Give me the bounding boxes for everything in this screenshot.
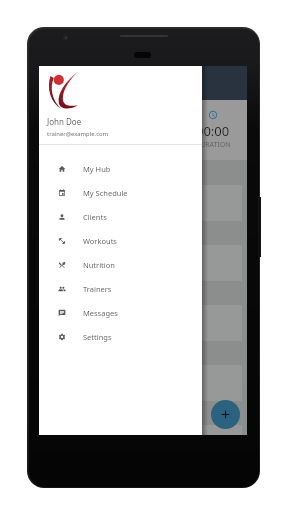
staticText: trainer@example.com [47, 130, 109, 138]
staticText: Workouts [83, 236, 117, 246]
button[interactable]: Messages [39, 301, 202, 325]
button[interactable]: Add workout [211, 400, 240, 429]
button[interactable]: Nutrition [39, 253, 202, 277]
staticText: Clients [83, 212, 107, 222]
button[interactable] [45, 185, 242, 221]
button[interactable]: Settings [39, 325, 202, 349]
staticText: WORKOUTS [55, 140, 94, 150]
staticText: 0 [70, 122, 78, 140]
button[interactable] [45, 245, 242, 281]
button[interactable]: My Hub [39, 157, 202, 181]
button[interactable]: Clients [39, 205, 202, 229]
staticText: Settings [83, 332, 112, 342]
staticText: Trainers [83, 284, 112, 294]
staticText: 00:00 [196, 122, 230, 140]
staticText: My Schedule [83, 188, 128, 198]
button[interactable] [45, 305, 242, 341]
staticText: DURATION [195, 140, 231, 150]
button[interactable]: Trainers [39, 277, 202, 301]
staticText: My Hub [83, 164, 111, 174]
staticText: Messages [83, 308, 118, 318]
button[interactable]: Workouts [39, 229, 202, 253]
staticText: CLIENTS [130, 140, 158, 150]
button[interactable]: My Schedule [39, 181, 202, 205]
button[interactable] [45, 365, 242, 401]
button[interactable] [45, 425, 242, 435]
staticText: Nutrition [83, 260, 115, 270]
staticText: John Doe [47, 116, 82, 127]
